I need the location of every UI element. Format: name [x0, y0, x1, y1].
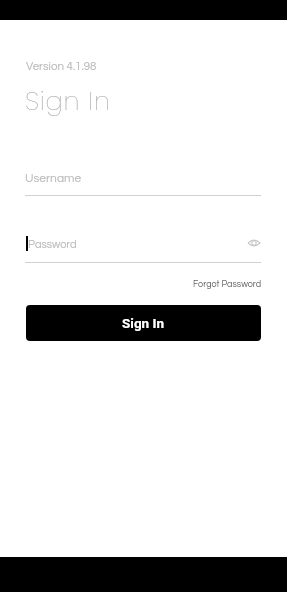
staticText: Version 4.1.98	[26, 61, 97, 73]
staticText: Sign In	[25, 83, 111, 119]
button[interactable]: Sign In	[26, 305, 261, 341]
staticText: Password	[28, 239, 77, 250]
button[interactable]: Show password	[244, 233, 264, 253]
staticText: Username	[25, 172, 82, 184]
button[interactable]: Forgot Password	[193, 280, 262, 289]
staticText: Sign In	[122, 315, 165, 331]
staticText: Forgot Password	[193, 280, 262, 289]
